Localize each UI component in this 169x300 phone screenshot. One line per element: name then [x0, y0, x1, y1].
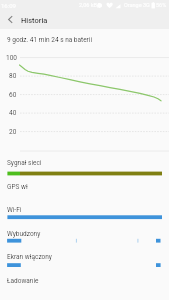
staticText: 80 — [9, 72, 17, 80]
staticText: Orange 3G — [124, 2, 150, 8]
staticText: 56% — [156, 2, 167, 8]
staticText: 100 — [6, 54, 17, 62]
staticText: 16:09 — [1, 2, 16, 9]
button[interactable]: Ładowanie — [0, 276, 169, 298]
staticText: Wybudzony — [7, 230, 41, 238]
staticText: Ekran włączony — [7, 253, 52, 261]
staticText: Wi-Fi — [7, 206, 22, 214]
button[interactable]: GPS wł — [0, 182, 169, 204]
staticText: 20 — [9, 128, 17, 136]
staticText: Ładowanie — [7, 277, 39, 285]
staticText: 9 godz. 41 min 24 s na baterii — [7, 36, 92, 44]
button[interactable]: Wybudzony — [0, 229, 169, 251]
staticText: 40 — [9, 109, 17, 117]
staticText: 2,06 kB/s — [79, 2, 103, 8]
staticText: Historia — [21, 16, 48, 25]
button[interactable]: Wi-Fi — [0, 205, 169, 227]
button[interactable]: Back — [2, 11, 18, 27]
staticText: 60 — [9, 91, 17, 99]
button[interactable]: Sygnał sieci — [0, 158, 169, 180]
staticText: Sygnał sieci — [7, 159, 42, 167]
button[interactable]: Ekran włączony — [0, 252, 169, 274]
staticText: GPS wł — [7, 183, 28, 191]
